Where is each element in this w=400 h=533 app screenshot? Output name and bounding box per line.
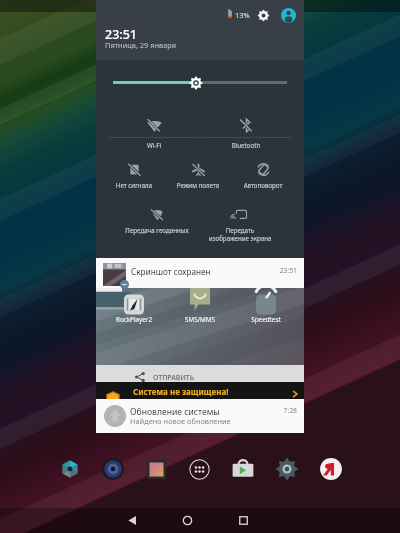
button[interactable]: Bluetooth (201, 118, 291, 149)
button[interactable]: Back (116, 508, 148, 533)
staticText: Скриншот сохранен (131, 266, 211, 277)
button[interactable]: Music (100, 456, 126, 482)
button[interactable]: Recents (227, 508, 259, 533)
button[interactable]: Settings (274, 456, 300, 482)
button[interactable]: Передать изображение экрана (195, 208, 285, 242)
button[interactable]: Browser (318, 456, 344, 482)
button[interactable]: Gallery (143, 456, 170, 483)
staticText: Wi-Fi (109, 141, 199, 149)
staticText: Передача геоданных (112, 226, 202, 234)
button[interactable]: Автоповорот (218, 163, 308, 189)
button[interactable]: All apps (188, 458, 211, 481)
staticText: Bluetooth (201, 141, 291, 149)
staticText: 23:51 (105, 26, 138, 43)
staticText: SMS/MMS (165, 315, 235, 324)
staticText: Система не защищена! (133, 386, 229, 397)
button[interactable]: Передача геоданных (112, 208, 202, 234)
button[interactable]: Settings (255, 7, 271, 23)
button[interactable]: Нет сигнала (89, 163, 179, 189)
button[interactable]: ОТПРАВИТЬ (96, 365, 304, 382)
button[interactable]: RockPlayer2 (96, 288, 304, 365)
button[interactable]: Brightness (189, 76, 203, 90)
staticText: Найдено новое обновление (130, 416, 231, 426)
button[interactable]: Система не защищена! (96, 382, 304, 399)
staticText: 7:28 (283, 406, 297, 415)
button[interactable]: Home (171, 508, 203, 533)
staticText: Автоповорот (218, 181, 308, 189)
staticText: Speedtest (231, 315, 301, 324)
staticText: Пятница, 29 января (105, 40, 176, 50)
button[interactable]: Режим полета (153, 163, 243, 189)
button[interactable]: User profile (279, 6, 297, 24)
staticText: RockPlayer2 (99, 315, 169, 324)
button[interactable]: Скриншот сохранен (96, 258, 304, 288)
button[interactable]: Wi-Fi (109, 118, 199, 149)
staticText: Нет сигнала (89, 181, 179, 189)
staticText: 23:51 (279, 266, 297, 275)
staticText: Передать изображение экрана (195, 226, 285, 242)
button[interactable]: Обновление системы (96, 399, 304, 433)
staticText: 13% (235, 10, 250, 20)
staticText: ОТПРАВИТЬ (153, 373, 195, 382)
staticText: Режим полета (153, 181, 243, 189)
staticText: Обновление системы (130, 406, 220, 418)
button[interactable]: Play Store (230, 456, 256, 482)
button[interactable]: Camera (59, 458, 81, 480)
